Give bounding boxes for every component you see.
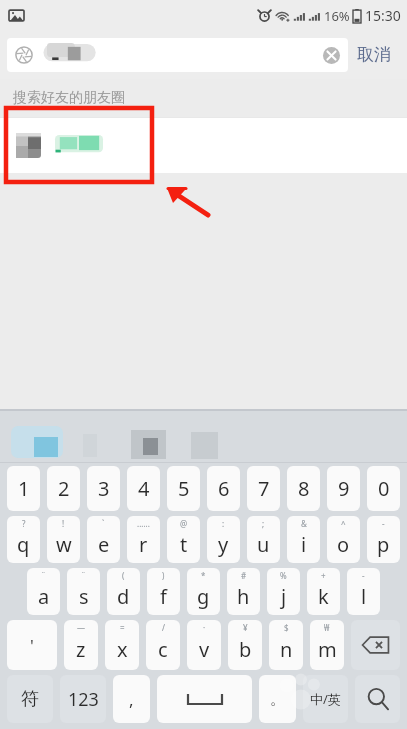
button[interactable]: %: [267, 568, 300, 615]
button[interactable]: 8: [287, 466, 320, 511]
button[interactable]: 1: [7, 466, 40, 511]
staticText: #: [241, 570, 247, 581]
staticText: 取消: [357, 44, 391, 65]
staticText: &: [301, 518, 307, 529]
staticText: g: [197, 583, 210, 610]
button[interactable]: ¨: [67, 568, 100, 615]
staticText: j: [281, 583, 287, 610]
button[interactable]: ^: [327, 516, 360, 563]
staticText: 9: [338, 475, 350, 502]
staticText: b: [239, 636, 252, 663]
button[interactable]: 取消: [348, 38, 400, 71]
button[interactable]: Backspace: [351, 620, 400, 670]
staticText: q: [17, 531, 30, 558]
staticText: ¥: [243, 622, 248, 633]
button[interactable]: +: [307, 568, 340, 615]
button[interactable]: *: [187, 568, 220, 615]
button[interactable]: 4: [127, 466, 160, 511]
staticText: ): [162, 570, 165, 581]
button[interactable]: [0, 117, 407, 173]
button[interactable]: 7: [247, 466, 280, 511]
staticText: 0: [378, 475, 390, 502]
staticText: p: [377, 531, 390, 558]
button[interactable]: ¨: [27, 568, 60, 615]
button[interactable]: ,: [113, 675, 150, 723]
button[interactable]: @: [167, 516, 200, 563]
staticText: 符: [21, 688, 39, 711]
staticText: !: [62, 518, 65, 529]
staticText: ,: [129, 688, 134, 711]
staticText: f: [160, 583, 167, 610]
staticText: r: [139, 531, 148, 558]
staticText: -: [382, 518, 385, 529]
staticText: 4: [138, 475, 150, 502]
staticText: +: [321, 570, 326, 581]
button[interactable]: —: [64, 620, 98, 670]
staticText: u: [257, 531, 270, 558]
staticText: e: [98, 531, 110, 558]
button[interactable]: !: [47, 516, 80, 563]
button[interactable]: 。: [259, 675, 296, 723]
button[interactable]: (: [107, 568, 140, 615]
staticText: ¨: [41, 570, 46, 581]
button[interactable]: ;: [247, 516, 280, 563]
staticText: s: [79, 583, 89, 610]
button[interactable]: Clear text: [321, 45, 341, 65]
button[interactable]: =: [105, 620, 139, 670]
button[interactable]: `: [87, 516, 120, 563]
staticText: `: [102, 518, 105, 529]
staticText: h: [237, 583, 250, 610]
button[interactable]: ......: [127, 516, 160, 563]
button[interactable]: 3: [87, 466, 120, 511]
staticText: 搜索好友的朋友圈: [13, 89, 125, 107]
button[interactable]: 9: [327, 466, 360, 511]
staticText: 3: [98, 475, 110, 502]
button[interactable]: 中/英: [303, 675, 348, 723]
staticText: c: [158, 636, 168, 663]
button[interactable]: 符: [7, 675, 53, 723]
staticText: i: [301, 531, 307, 558]
staticText: w: [56, 531, 72, 558]
staticText: (: [122, 570, 125, 581]
staticText: d: [117, 583, 130, 610]
button[interactable]: Search: [355, 675, 400, 723]
button[interactable]: 5: [167, 466, 200, 511]
staticText: 中/英: [310, 690, 341, 708]
button[interactable]: Space: [157, 675, 252, 723]
button[interactable]: ·: [187, 620, 221, 670]
button[interactable]: $: [269, 620, 303, 670]
staticText: y: [218, 531, 229, 558]
staticText: 6: [218, 475, 230, 502]
button[interactable]: ?: [7, 516, 40, 563]
button[interactable]: 0: [367, 466, 400, 511]
staticText: $: [284, 622, 289, 633]
button[interactable]: ): [147, 568, 180, 615]
other: Scan: [15, 46, 33, 64]
button[interactable]: 2: [47, 466, 80, 511]
staticText: 2: [58, 475, 70, 502]
button[interactable]: /: [146, 620, 180, 670]
staticText: ': [30, 634, 34, 657]
button[interactable]: #: [227, 568, 260, 615]
staticText: ₩: [324, 622, 330, 633]
button[interactable]: -: [347, 568, 380, 615]
staticText: :: [222, 518, 225, 529]
staticText: ·: [203, 622, 206, 633]
button[interactable]: ₩: [310, 620, 344, 670]
button[interactable]: -: [367, 516, 400, 563]
button[interactable]: Scan: [7, 38, 348, 72]
button[interactable]: 6: [207, 466, 240, 511]
button[interactable]: 123: [60, 675, 106, 723]
button[interactable]: ': [7, 620, 57, 670]
staticText: 8: [298, 475, 310, 502]
staticText: z: [76, 636, 86, 663]
staticText: l: [361, 583, 367, 610]
staticText: 7: [258, 475, 270, 502]
button[interactable]: :: [207, 516, 240, 563]
staticText: a: [38, 583, 50, 610]
staticText: %: [280, 570, 287, 581]
staticText: ^: [341, 518, 346, 529]
button[interactable]: ¥: [228, 620, 262, 670]
staticText: n: [280, 636, 293, 663]
button[interactable]: &: [287, 516, 320, 563]
